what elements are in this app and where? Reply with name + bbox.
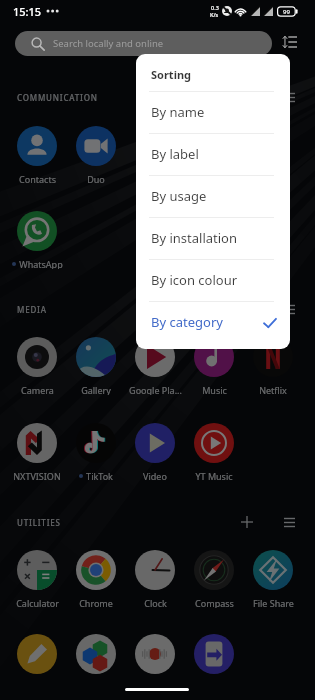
button[interactable]: WhatsApp [8, 205, 66, 269]
button[interactable]: Google Pla... [126, 331, 184, 395]
staticText: By installation [151, 229, 238, 247]
staticText: Gallery [81, 384, 111, 395]
button[interactable]: Clock [126, 544, 184, 608]
staticText: TikTok [86, 470, 113, 481]
staticText: Duo [87, 173, 105, 184]
button[interactable]: By icon colour [136, 260, 290, 301]
button[interactable]: Gallery [67, 331, 125, 395]
button[interactable]: Sorting [277, 29, 303, 55]
button[interactable]: Contacts [8, 120, 66, 184]
staticText: Sorting [151, 67, 192, 82]
button[interactable]: Section menu [278, 86, 300, 108]
button[interactable]: TikTok [67, 417, 125, 481]
staticText: By name [151, 103, 205, 121]
staticText: Music [202, 384, 227, 395]
staticText: File Share [253, 597, 294, 608]
staticText: Netflix [259, 384, 287, 395]
button[interactable]: Netflix [244, 331, 302, 395]
button[interactable]: Compass [185, 544, 243, 608]
button[interactable]: YT Music [185, 417, 243, 481]
button[interactable]: By usage [136, 176, 290, 217]
staticText: Clock [144, 597, 167, 608]
button[interactable] [67, 628, 125, 692]
button[interactable]: Calculator [8, 544, 66, 608]
staticText: Search locally and online [53, 37, 164, 50]
button[interactable]: Music [185, 331, 243, 395]
button[interactable]: Section menu [278, 298, 300, 320]
button[interactable]: Add [236, 511, 258, 533]
button[interactable]: Section menu [278, 511, 300, 533]
staticText: 0.3 [211, 4, 219, 11]
staticText: Contacts [19, 173, 56, 184]
staticText: By usage [151, 187, 207, 205]
button[interactable] [185, 628, 243, 692]
button[interactable]: Search locally and online [15, 31, 272, 56]
button[interactable]: NXTVISION [8, 417, 66, 481]
button[interactable]: Duo [67, 120, 125, 184]
staticText: Google Pla... [129, 384, 182, 395]
button[interactable]: Video [126, 417, 184, 481]
staticText: Camera [21, 384, 54, 395]
staticText: Calculator [16, 597, 59, 608]
staticText: NXTVISION [13, 470, 61, 481]
staticText: COMMUNICATION [17, 92, 98, 103]
button[interactable]: Camera [8, 331, 66, 395]
staticText: K/s [210, 11, 219, 18]
button[interactable]: By label [136, 134, 290, 175]
staticText: WhatsApp [19, 258, 63, 269]
staticText: 15:15 [13, 4, 42, 19]
staticText: UTILITIES [17, 517, 61, 528]
button[interactable]: By installation [136, 218, 290, 259]
staticText: Chrome [79, 597, 113, 608]
staticText: Compass [195, 597, 234, 608]
button[interactable] [8, 628, 66, 692]
button[interactable]: By category [136, 302, 290, 343]
button[interactable] [126, 628, 184, 692]
staticText: Video [143, 470, 167, 481]
button[interactable]: File Share [244, 544, 302, 608]
staticText: By icon colour [151, 271, 238, 289]
staticText: MEDIA [17, 304, 47, 315]
button[interactable]: By name [136, 92, 290, 133]
staticText: By category [151, 313, 223, 331]
staticText: By label [151, 145, 199, 163]
button[interactable]: Chrome [67, 544, 125, 608]
staticText: YT Music [195, 470, 233, 481]
staticText: 99 [283, 8, 290, 16]
